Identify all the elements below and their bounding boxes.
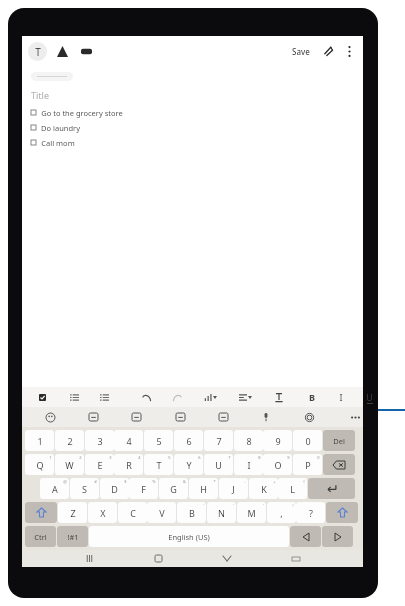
button[interactable]: key [25,502,57,523]
staticText: Title [31,89,49,101]
button[interactable]: B [177,502,206,523]
button[interactable]: Back [216,550,238,567]
button[interactable]: English (US) [89,526,289,547]
button[interactable]: S [70,478,99,499]
button[interactable]: Keyboard tool 0 [40,407,60,427]
button[interactable]: Keyboard tool 6 [299,407,319,427]
button[interactable]: Keyboard tool 2 [126,407,146,427]
button[interactable]: Keyboard tool 1 [83,407,103,427]
button[interactable]: Do laundry [31,122,363,133]
button[interactable]: key [323,454,355,475]
button[interactable]: Save [288,42,314,61]
button[interactable]: Home [147,550,169,567]
button[interactable]: Format tool [65,387,83,407]
button[interactable]: 2 [55,430,84,451]
button[interactable]: H [189,478,218,499]
button[interactable]: Y [174,454,203,475]
button[interactable]: 5 [144,430,173,451]
button[interactable]: ? [296,502,325,523]
staticText: English (US) [168,532,210,542]
staticText: - [244,479,246,484]
button[interactable]: Format tool [236,387,254,407]
button[interactable]: C [118,502,147,523]
button[interactable]: Call mom [31,137,363,148]
button[interactable]: Format tool [332,387,350,407]
button[interactable]: Format tool [360,387,378,407]
staticText: P [305,459,311,471]
button[interactable]: V [147,502,176,523]
button[interactable]: J [219,478,248,499]
staticText: B [309,391,315,403]
button[interactable]: !#1 [57,526,88,547]
button[interactable]: Hide keyboard [285,550,307,567]
button[interactable]: key [322,526,353,547]
button[interactable]: T [144,454,173,475]
staticText: 4 [138,455,141,460]
button[interactable]: key [308,478,355,499]
staticText: 7 [216,435,222,447]
button[interactable]: O [263,454,292,475]
button[interactable]: A [40,478,69,499]
button[interactable]: Pen [54,43,71,60]
button[interactable]: 7 [204,430,233,451]
staticText: 5 [156,435,162,447]
staticText: Go to the grocery store [41,108,123,118]
button[interactable]: R [114,454,143,475]
button[interactable]: Format tool [303,387,321,407]
button[interactable]: Keyboard tool 3 [170,407,190,427]
button[interactable]: X [88,502,117,523]
staticText: U [366,391,373,403]
button[interactable]: , [267,502,296,523]
staticText: Y [186,459,192,471]
button[interactable]: Attach [320,43,336,59]
button[interactable]: 0 [293,430,322,451]
button[interactable]: Q [25,454,54,475]
button[interactable]: D [100,478,129,499]
button[interactable]: Format tool [137,387,155,407]
button[interactable]: 8 [234,430,263,451]
button[interactable]: E [85,454,114,475]
button[interactable]: 3 [85,430,114,451]
button[interactable]: F [129,478,158,499]
staticText: 0 [305,435,311,447]
button[interactable]: L [278,478,307,499]
button[interactable]: W [55,454,84,475]
button[interactable]: Text mode [28,42,47,61]
button[interactable]: Recents [78,550,100,567]
button[interactable]: key [290,526,321,547]
staticText: * [213,479,216,484]
button[interactable]: U [204,454,233,475]
button[interactable]: M [237,502,266,523]
staticText: I [247,459,251,471]
button[interactable]: More options [341,43,357,59]
button[interactable]: Go to the grocery store [31,107,363,118]
button[interactable]: 9 [263,430,292,451]
staticText: L [290,483,295,495]
button[interactable]: Format tool [270,387,288,407]
button[interactable]: Keyboard tool 7 [345,407,365,427]
button[interactable]: Keyboard tool 5 [256,407,276,427]
button[interactable]: Eraser [78,43,95,60]
staticText: N [218,507,225,519]
button[interactable]: Del [323,430,355,451]
staticText: ' [233,503,234,508]
button[interactable]: Keyboard tool 4 [213,407,233,427]
button[interactable]: K [249,478,278,499]
button[interactable]: I [234,454,263,475]
button[interactable]: Format tool [168,387,186,407]
button[interactable]: 6 [174,430,203,451]
button[interactable]: P [293,454,322,475]
button[interactable]: N [207,502,236,523]
button[interactable]: Format tool [33,387,51,407]
button[interactable]: Tag [31,72,73,81]
button[interactable]: 4 [114,430,143,451]
button[interactable]: Ctrl [25,526,56,547]
button[interactable]: Format tool [202,387,220,407]
button[interactable]: Format tool [95,387,113,407]
button[interactable]: Z [58,502,87,523]
staticText: ' [203,503,204,508]
button[interactable]: key [326,502,358,523]
button[interactable]: 1 [25,430,54,451]
staticText: @ [63,479,67,484]
button[interactable]: G [159,478,188,499]
